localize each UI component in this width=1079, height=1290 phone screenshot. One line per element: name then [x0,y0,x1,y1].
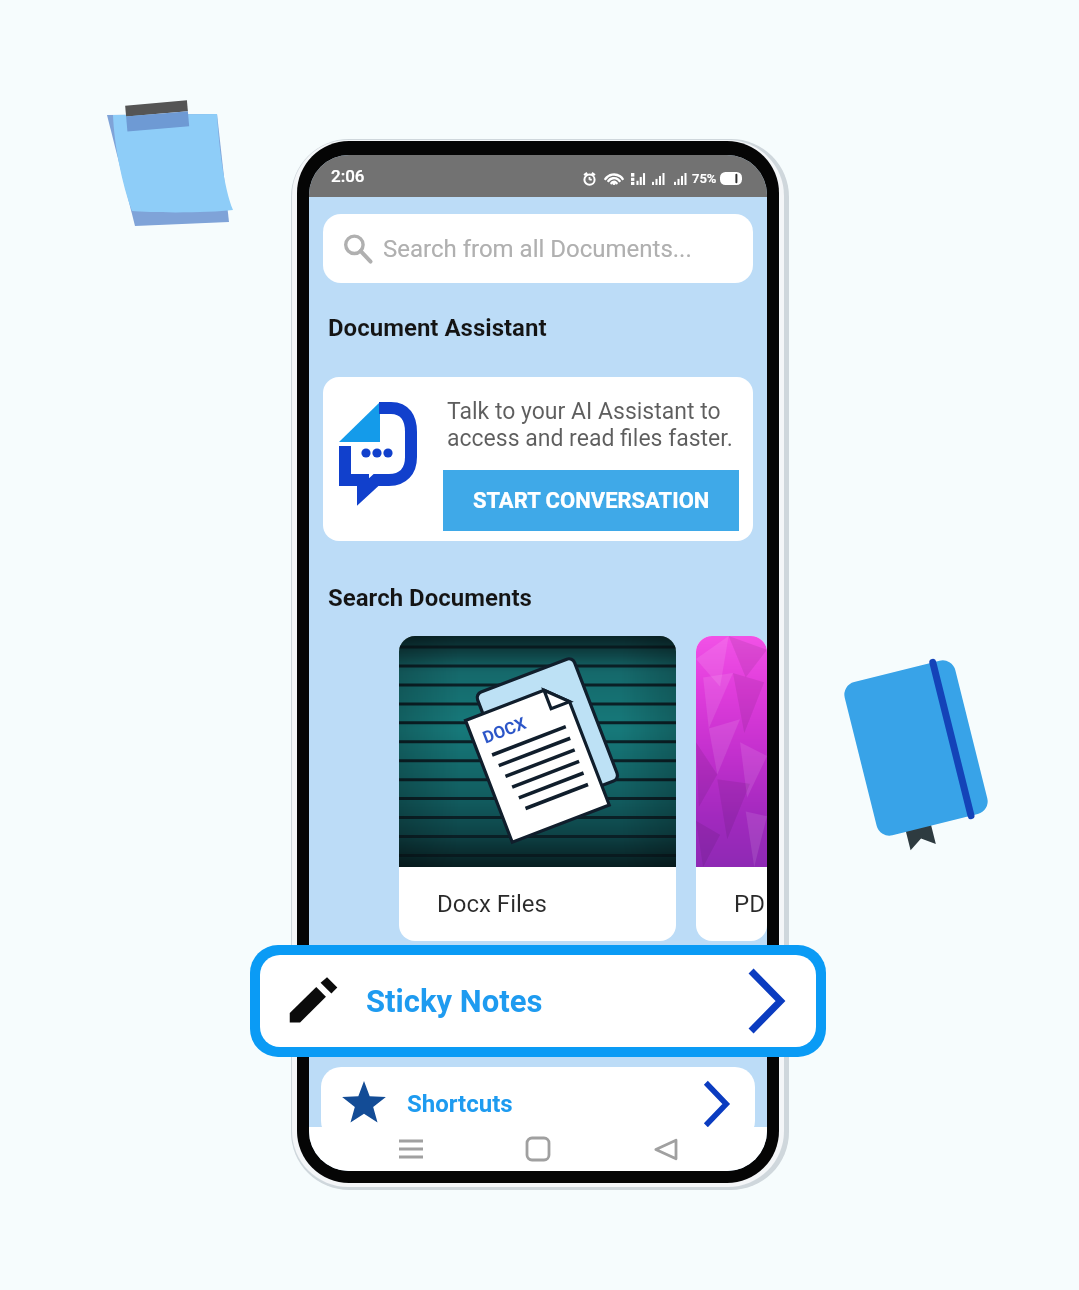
button[interactable]: Recent apps [386,1127,436,1171]
button[interactable]: START CONVERSATION [443,470,739,531]
staticText: 75% [692,171,717,186]
button[interactable]: Home [513,1127,563,1171]
staticText: Shortcuts [407,1090,513,1118]
button[interactable]: Back [640,1127,690,1171]
staticText: PDF Files [734,890,767,918]
staticText: Search Documents [328,584,532,612]
staticText: access and read files faster. [447,425,733,452]
staticText: 2:06 [331,166,365,186]
button[interactable]: PDF Files [696,636,767,941]
button[interactable]: Sticky Notes [260,955,816,1047]
staticText: Docx Files [437,890,547,918]
button[interactable]: Sticky Notes [321,950,755,1030]
button[interactable]: Docx Files [399,636,676,941]
button[interactable]: Search from all Documents... [323,214,753,283]
staticText: Sticky Notes [409,974,569,1007]
staticText: Talk to your AI Assistant to [447,398,721,425]
button[interactable]: Shortcuts [321,1067,755,1141]
staticText: Document Assistant [328,314,547,342]
staticText: Sticky Notes [366,983,543,1019]
staticText: Search from all Documents... [383,235,692,263]
staticText: START CONVERSATION [473,488,710,514]
